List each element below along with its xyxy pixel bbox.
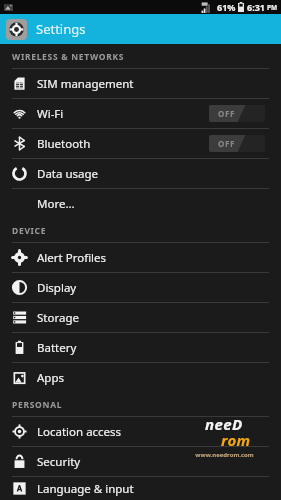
button[interactable]: Storage: [0, 303, 281, 332]
button[interactable]: Battery: [0, 333, 281, 362]
button[interactable]: Display: [0, 273, 281, 302]
button[interactable]: Wi-Fi: [0, 99, 281, 128]
staticText: PM: [267, 3, 278, 12]
staticText: SIM management: [37, 76, 281, 92]
other: Settings app icon: [6, 19, 27, 40]
staticText: PERSONAL: [12, 399, 63, 411]
staticText: DEVICE: [12, 225, 47, 237]
staticText: www.needrom.com: [195, 451, 254, 459]
button[interactable]: Settings app icon: [0, 14, 281, 44]
staticText: Storage: [37, 310, 281, 326]
staticText: 61%: [217, 1, 236, 13]
button[interactable]: Alert Profiles: [0, 243, 281, 272]
staticText: Security: [37, 454, 281, 470]
button[interactable]: Location access: [0, 417, 281, 446]
staticText: Apps: [37, 370, 281, 386]
staticText: Battery: [37, 340, 281, 356]
button[interactable]: More…: [0, 189, 281, 218]
button[interactable]: Data usage: [0, 159, 281, 188]
staticText: Data usage: [37, 166, 281, 182]
staticText: Wi-Fi: [37, 106, 209, 122]
button[interactable]: SIM management: [0, 69, 281, 98]
staticText: OFF: [218, 108, 235, 119]
button[interactable]: Language & input: [0, 477, 281, 500]
staticText: Settings: [36, 20, 86, 38]
staticText: Language & input: [37, 481, 281, 497]
staticText: Bluetooth: [37, 136, 209, 152]
staticText: Alert Profiles: [37, 250, 281, 266]
staticText: rom: [221, 430, 251, 450]
button[interactable]: Apps: [0, 363, 281, 392]
button[interactable]: Toggle off: [209, 135, 265, 152]
staticText: OFF: [218, 138, 235, 149]
button[interactable]: Toggle off: [209, 105, 265, 122]
staticText: Display: [37, 280, 281, 296]
staticText: 6:31: [247, 1, 265, 13]
staticText: WIRELESS & NETWORKS: [12, 51, 125, 63]
button[interactable]: Security: [0, 447, 281, 476]
staticText: neeD: [205, 414, 243, 434]
button[interactable]: Bluetooth: [0, 129, 281, 158]
staticText: Location access: [37, 424, 281, 440]
staticText: More…: [37, 196, 281, 212]
